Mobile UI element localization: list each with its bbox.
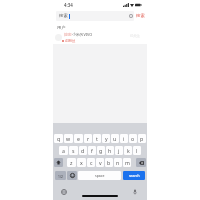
button[interactable]: d — [79, 146, 87, 155]
staticText: 搜索 — [64, 32, 72, 37]
button[interactable]: c — [87, 158, 95, 167]
staticText: n — [116, 159, 120, 166]
staticText: q — [57, 135, 61, 142]
button[interactable]: h — [106, 146, 114, 155]
staticText: y — [105, 135, 108, 142]
staticText: v — [99, 159, 102, 166]
staticText: 1/2 — [58, 174, 63, 178]
button[interactable]: i — [120, 134, 128, 143]
button[interactable]: Emoji — [67, 171, 77, 180]
staticText: s — [72, 147, 75, 154]
staticText: c — [90, 159, 93, 166]
button[interactable]: z — [67, 158, 76, 167]
staticText: 搜索 — [136, 13, 145, 19]
button[interactable]: space — [78, 171, 121, 180]
button[interactable]: Clear text — [129, 14, 133, 18]
staticText: t — [96, 135, 98, 142]
button[interactable]: o — [129, 134, 137, 143]
staticText: 4:34 — [64, 2, 73, 8]
staticText: u — [113, 135, 117, 142]
button[interactable]: u — [111, 134, 119, 143]
staticText: z — [70, 159, 73, 166]
staticText: search — [129, 173, 140, 178]
staticText: space — [95, 173, 105, 178]
button[interactable]: q — [54, 134, 63, 143]
staticText: h — [108, 147, 112, 154]
button[interactable]: Switch keyboard — [61, 189, 67, 195]
button[interactable]: Backspace — [136, 158, 146, 167]
staticText: p — [140, 135, 144, 142]
staticText: l — [136, 147, 138, 154]
other: Backspace — [136, 158, 146, 167]
button[interactable]: w — [64, 134, 73, 143]
button[interactable]: t — [93, 134, 101, 143]
staticText: o — [131, 135, 135, 142]
staticText: g — [99, 147, 103, 154]
staticText: 43粉丝 — [65, 38, 76, 43]
button[interactable]: 搜索 — [53, 31, 147, 44]
staticText: k — [127, 147, 130, 154]
button[interactable]: n — [114, 158, 122, 167]
button[interactable]: 搜索 — [56, 11, 134, 21]
button[interactable]: g — [97, 146, 105, 155]
staticText: m — [125, 159, 130, 166]
staticText: x — [80, 159, 83, 166]
staticText: 用户 — [57, 25, 66, 30]
button[interactable]: f — [88, 146, 96, 155]
button[interactable]: Shift — [54, 158, 63, 167]
button[interactable]: m — [123, 158, 131, 167]
button[interactable]: 1/2 — [55, 171, 66, 180]
button[interactable]: 搜索 — [135, 10, 146, 22]
button[interactable]: j — [115, 146, 123, 155]
staticText: 搜索 — [59, 13, 68, 19]
button[interactable]: s — [69, 146, 78, 155]
staticText: w — [66, 135, 71, 142]
staticText: a — [62, 147, 65, 154]
staticText: 已关注 — [130, 34, 140, 38]
button[interactable]: a — [59, 146, 68, 155]
button[interactable]: y — [102, 134, 110, 143]
staticText: f — [91, 147, 93, 154]
staticText: i — [123, 135, 125, 142]
staticText: b — [107, 159, 111, 166]
other: Emoji — [67, 171, 77, 180]
other: Shift — [54, 158, 63, 167]
button[interactable]: k — [124, 146, 132, 155]
button[interactable]: p — [138, 134, 146, 143]
staticText: d — [81, 147, 85, 154]
button[interactable]: x — [77, 158, 86, 167]
button[interactable]: e — [74, 134, 83, 143]
staticText: r — [87, 135, 90, 142]
button[interactable]: l — [133, 146, 141, 155]
button[interactable]: r — [84, 134, 92, 143]
button[interactable]: search — [123, 171, 145, 180]
button[interactable]: b — [105, 158, 113, 167]
button[interactable]: Voice input — [132, 189, 138, 195]
staticText: j — [118, 147, 120, 154]
button[interactable]: v — [96, 158, 104, 167]
staticText: 小米的VIVO — [72, 32, 93, 37]
staticText: e — [77, 135, 80, 142]
